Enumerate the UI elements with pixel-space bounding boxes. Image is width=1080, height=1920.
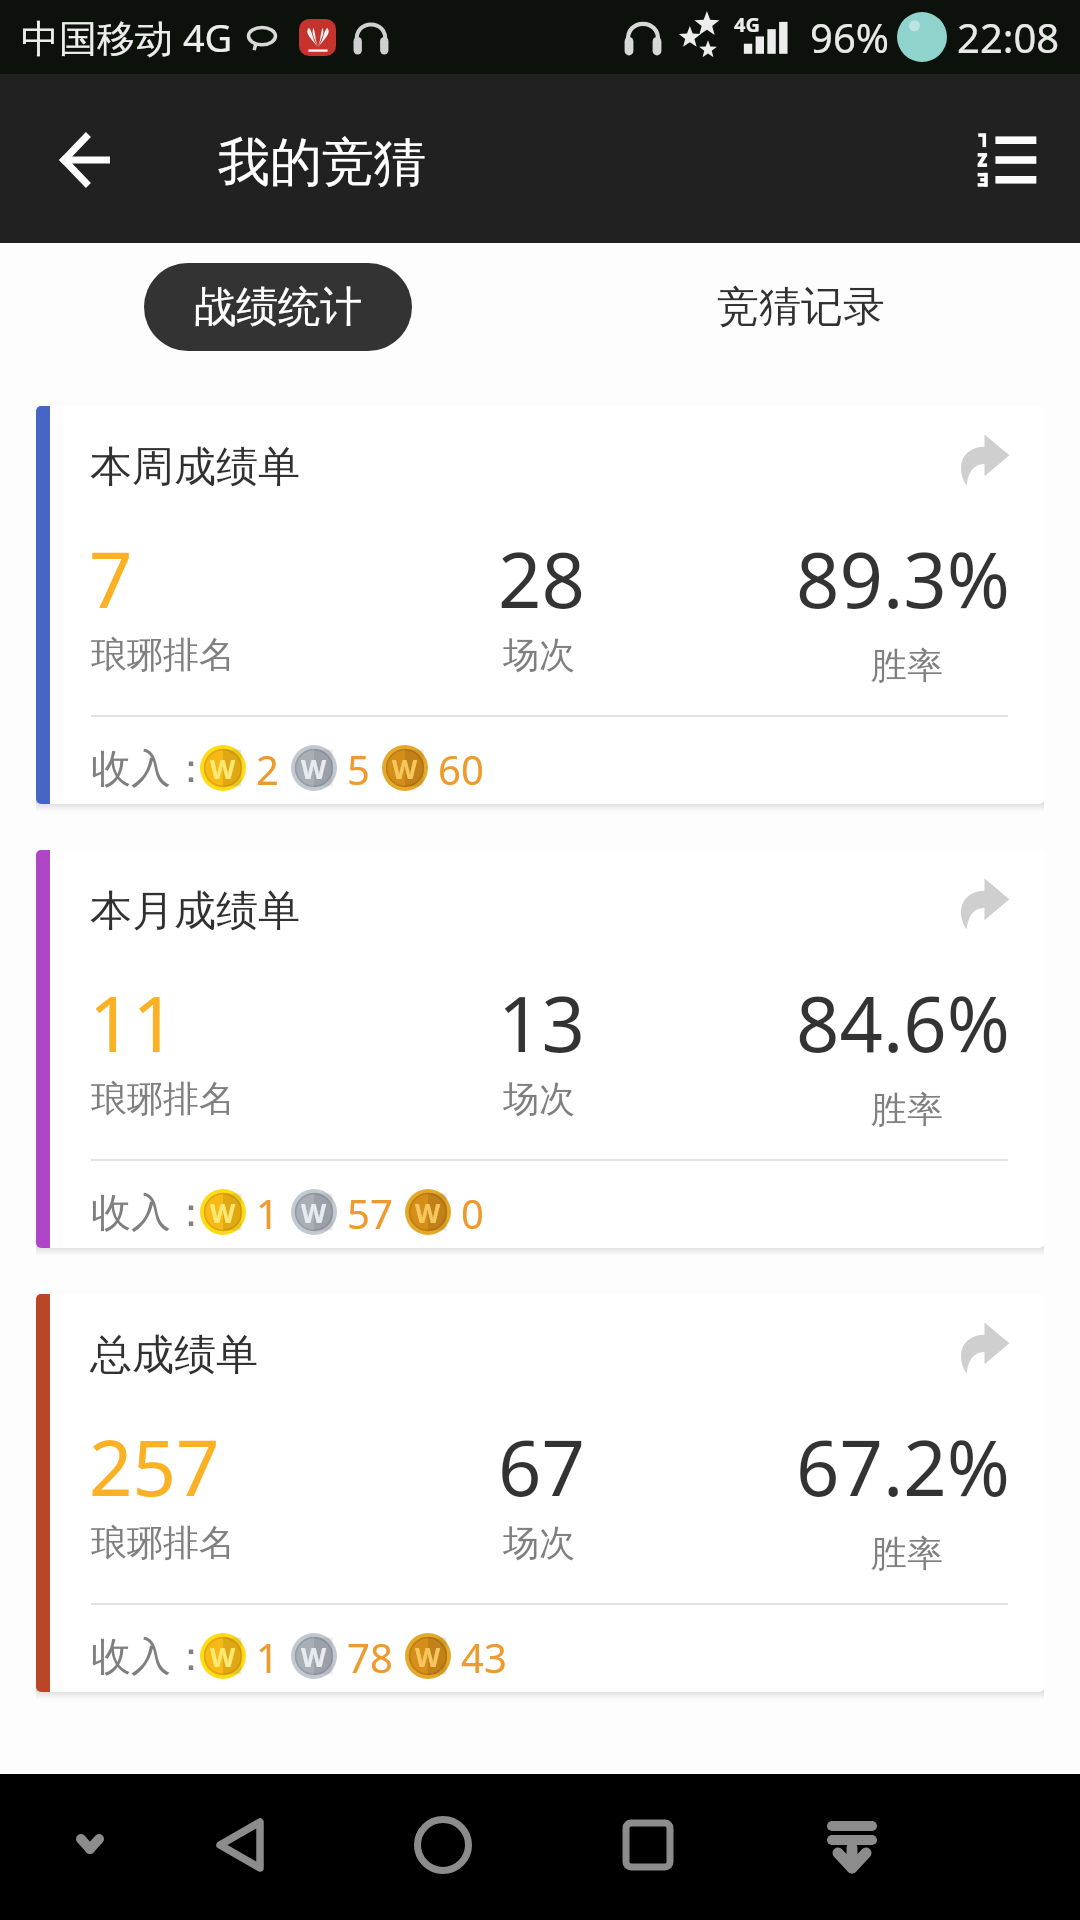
staticText: 战绩统计 [194, 281, 362, 334]
staticText: 96% [810, 10, 889, 64]
staticText: 场次 [503, 1076, 575, 1121]
staticText: W [210, 1639, 236, 1674]
staticText: 琅琊排名 [91, 1076, 235, 1121]
button[interactable]: 战绩统计 [144, 263, 412, 351]
staticText: 28 [498, 527, 585, 631]
staticText: 中国移动 4G [21, 11, 233, 63]
staticText: 总成绩单 [90, 1329, 258, 1382]
button[interactable] [36, 406, 1044, 804]
staticText: 本周成绩单 [90, 441, 300, 494]
staticText: 收入： [91, 1187, 211, 1237]
staticText: 60 [438, 742, 484, 794]
staticText: 67.2% [796, 1415, 1010, 1519]
staticText: 胜率 [871, 1531, 943, 1576]
staticText: 257 [89, 1415, 220, 1519]
staticText: 场次 [503, 1520, 575, 1565]
staticText: 胜率 [871, 1087, 943, 1132]
staticText: W [301, 1639, 327, 1674]
button[interactable]: Back [50, 124, 122, 196]
staticText: 2 [256, 742, 279, 794]
staticText: W [392, 751, 418, 786]
staticText: 89.3% [796, 527, 1010, 631]
staticText: 78 [347, 1630, 393, 1682]
staticText: 琅琊排名 [91, 632, 235, 677]
staticText: W [210, 1195, 236, 1230]
staticText: W [415, 1195, 441, 1230]
button[interactable]: Share [952, 875, 1010, 933]
button[interactable]: Home [387, 1792, 499, 1902]
staticText: 57 [347, 1186, 393, 1238]
staticText: W [301, 751, 327, 786]
button[interactable]: 竞猜记录 [667, 263, 935, 351]
button[interactable]: Ranking list [966, 122, 1042, 198]
staticText: 收入： [91, 1631, 211, 1681]
staticText: 43 [461, 1630, 507, 1682]
staticText: 1 [256, 1186, 279, 1238]
staticText: 琅琊排名 [91, 1520, 235, 1565]
staticText: 我的竞猜 [218, 130, 426, 196]
staticText: 5 [347, 742, 370, 794]
staticText: 收入： [91, 743, 211, 793]
button[interactable]: Share [952, 1319, 1010, 1377]
staticText: 13 [498, 971, 585, 1075]
staticText: 竞猜记录 [717, 281, 885, 334]
staticText: 11 [89, 971, 176, 1075]
staticText: 1 [256, 1630, 279, 1682]
staticText: 84.6% [796, 971, 1010, 1075]
staticText: 本月成绩单 [90, 885, 300, 938]
staticText: 67 [498, 1415, 585, 1519]
button[interactable]: Scroll down [796, 1792, 908, 1902]
staticText: 胜率 [871, 643, 943, 688]
button[interactable]: Recents [592, 1792, 704, 1902]
staticText: 7 [89, 527, 133, 631]
button[interactable]: Back [184, 1792, 296, 1902]
button[interactable]: Share [952, 431, 1010, 489]
button[interactable]: Collapse keyboard [34, 1792, 146, 1902]
staticText: W [210, 751, 236, 786]
staticText: 22:08 [957, 10, 1060, 64]
staticText: W [415, 1639, 441, 1674]
button[interactable] [36, 850, 1044, 1248]
staticText: 0 [461, 1186, 484, 1238]
staticText: 4G [734, 11, 760, 38]
button[interactable] [36, 1294, 1044, 1692]
staticText: W [301, 1195, 327, 1230]
staticText: 场次 [503, 632, 575, 677]
